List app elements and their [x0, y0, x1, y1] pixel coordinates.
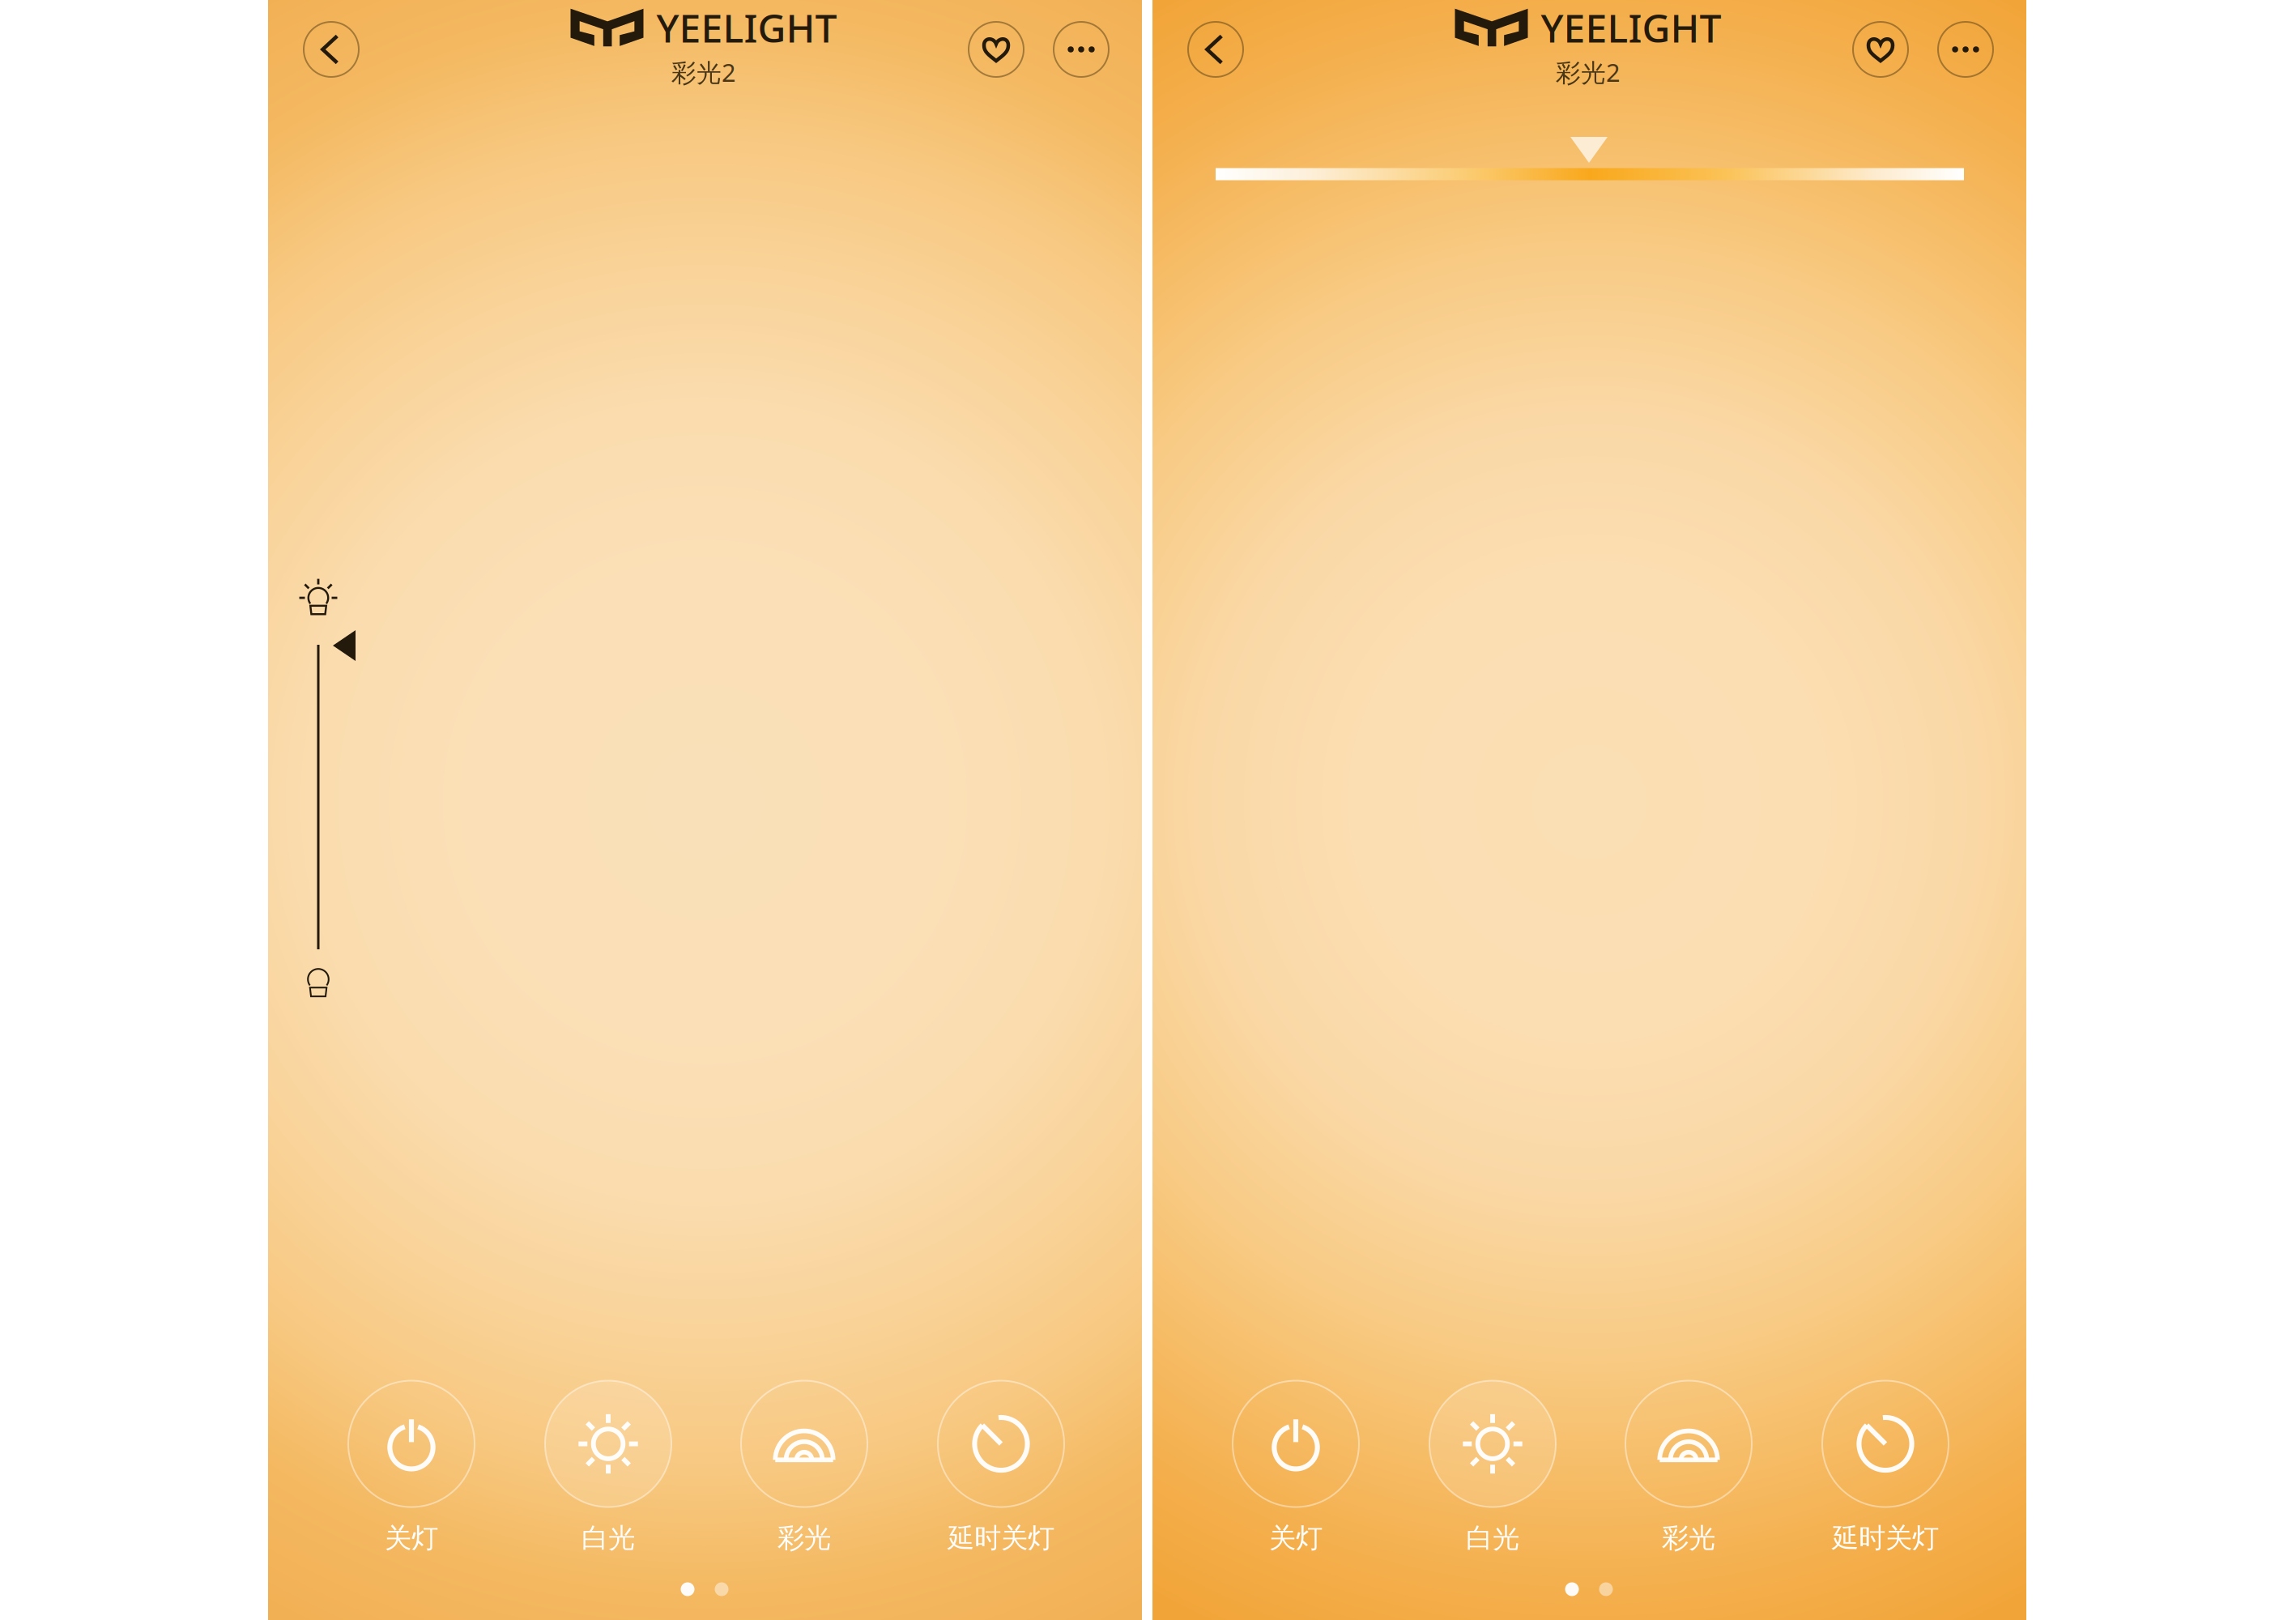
staticText: 关灯	[1269, 1522, 1323, 1555]
staticText: 彩光2	[671, 56, 736, 89]
staticText: 白光	[581, 1522, 635, 1555]
button[interactable]: 白光	[1391, 1381, 1594, 1555]
staticText: 白光	[1466, 1522, 1519, 1555]
button[interactable]: 白光	[507, 1381, 709, 1555]
button[interactable]: Colour temperature	[1216, 120, 1964, 201]
button[interactable]: 关灯	[1195, 1381, 1397, 1555]
button[interactable]: Favorite	[1853, 22, 1908, 77]
staticText: 彩光	[777, 1522, 831, 1555]
button[interactable]: Back	[304, 22, 359, 77]
button[interactable]: 延时关灯	[900, 1381, 1102, 1555]
button[interactable]: 彩光	[1587, 1381, 1790, 1555]
staticText: 延时关灯	[948, 1522, 1054, 1555]
button[interactable]: 关灯	[310, 1381, 513, 1555]
button[interactable]: More	[1938, 22, 1993, 77]
staticText: 延时关灯	[1832, 1522, 1939, 1555]
staticText: 彩光	[1662, 1522, 1715, 1555]
staticText: YEELIGHT	[1541, 2, 1721, 53]
staticText: 关灯	[385, 1522, 438, 1555]
staticText: 彩光2	[1556, 56, 1621, 89]
button[interactable]: 延时关灯	[1784, 1381, 1987, 1555]
button[interactable]: Brightness	[276, 545, 360, 1007]
button[interactable]: Back	[1188, 22, 1243, 77]
staticText: YEELIGHT	[656, 2, 837, 53]
button[interactable]: 彩光	[703, 1381, 905, 1555]
button[interactable]: Favorite	[969, 22, 1024, 77]
button[interactable]: More	[1054, 22, 1109, 77]
